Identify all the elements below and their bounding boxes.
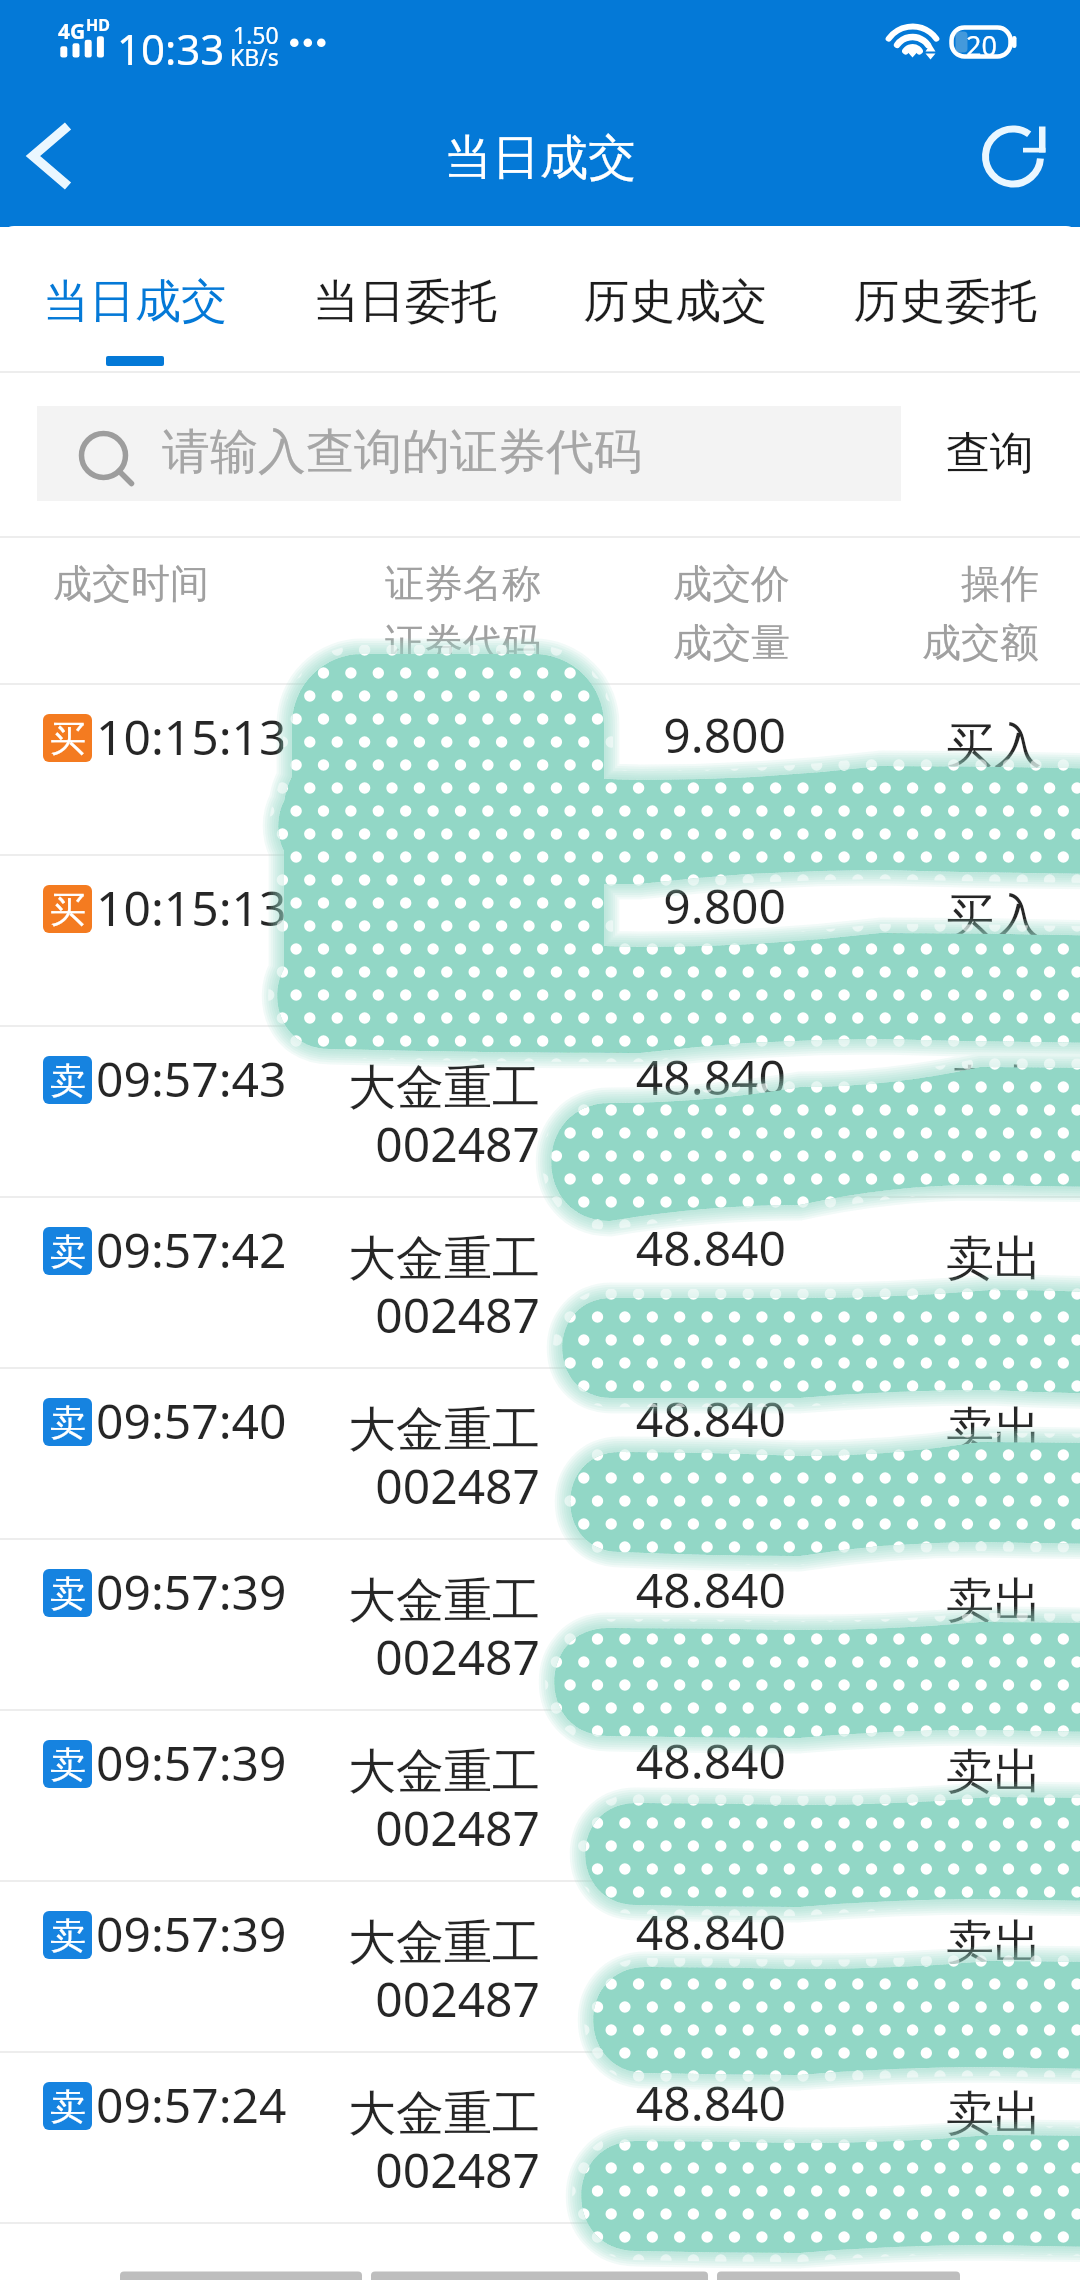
- staticText: 当日成交: [444, 128, 636, 188]
- staticText: 证券代码: [320, 618, 541, 667]
- button[interactable]: 卖: [0, 1027, 1080, 1198]
- staticText: 卖出: [946, 1571, 1042, 1631]
- staticText: 48.840: [590, 1386, 786, 1451]
- staticText: 卖: [50, 1058, 86, 1103]
- staticText: 卖: [50, 1571, 86, 1616]
- staticText: 买: [50, 887, 86, 932]
- staticText: 成交时间: [53, 559, 209, 608]
- staticText: 卖: [50, 1400, 86, 1445]
- staticText: 10:33: [117, 20, 225, 77]
- button[interactable]: Refresh: [962, 104, 1066, 208]
- staticText: 当日委托: [313, 273, 497, 331]
- staticText: 002487: [320, 2137, 540, 2202]
- button[interactable]: 卖: [0, 1711, 1080, 1882]
- button[interactable]: 买: [0, 685, 1080, 856]
- staticText: 大金重工: [320, 1742, 540, 1802]
- staticText: HD: [86, 14, 110, 36]
- staticText: 卖出: [946, 2084, 1042, 2144]
- button[interactable]: Back: [0, 104, 104, 208]
- staticText: 卖: [50, 2084, 86, 2129]
- staticText: 48.840: [590, 1044, 786, 1109]
- button[interactable]: 查询: [946, 406, 1034, 501]
- staticText: 卖出: [946, 1742, 1042, 1802]
- staticText: 当日成交: [43, 273, 227, 331]
- staticText: 卖: [50, 1913, 86, 1958]
- staticText: 09:57:24: [96, 2072, 287, 2137]
- staticText: 48.840: [590, 1557, 786, 1622]
- button[interactable]: 当日成交: [0, 227, 270, 373]
- staticText: 操作: [800, 559, 1039, 608]
- staticText: 请输入查询的证券代码: [162, 422, 642, 482]
- staticText: 卖出: [946, 1400, 1042, 1460]
- staticText: 卖出: [946, 1058, 1042, 1118]
- staticText: 大金重工: [320, 1058, 540, 1118]
- staticText: 002487: [320, 1966, 540, 2031]
- staticText: 大金重工: [320, 1400, 540, 1460]
- staticText: 历史委托: [853, 273, 1037, 331]
- staticText: 09:57:42: [96, 1217, 287, 1282]
- staticText: 10:15:13: [96, 875, 287, 940]
- staticText: 证券名称: [320, 559, 541, 608]
- staticText: 4G: [58, 17, 86, 46]
- staticText: 20: [966, 27, 997, 61]
- staticText: 09:57:39: [96, 1901, 287, 1966]
- staticText: 大金重工: [320, 1571, 540, 1631]
- staticText: 002487: [320, 1795, 540, 1860]
- staticText: 查询: [946, 426, 1034, 481]
- staticText: 09:57:43: [96, 1046, 287, 1111]
- staticText: 48.840: [590, 2070, 786, 2135]
- staticText: 002487: [320, 1624, 540, 1689]
- button[interactable]: 卖: [0, 1882, 1080, 2053]
- staticText: 09:57:39: [96, 1730, 287, 1795]
- button[interactable]: 历史委托: [810, 227, 1080, 373]
- staticText: 9.800: [590, 873, 786, 938]
- staticText: 大金重工: [320, 1229, 540, 1289]
- staticText: [320, 716, 540, 781]
- button[interactable]: 当日委托: [270, 227, 540, 373]
- staticText: 成交价: [590, 559, 790, 608]
- staticText: 大金重工: [320, 1913, 540, 1973]
- button[interactable]: 请输入查询的证券代码: [37, 406, 901, 501]
- staticText: 历史成交: [583, 273, 767, 331]
- staticText: 卖出: [946, 1913, 1042, 1973]
- button[interactable]: 卖: [0, 2053, 1080, 2224]
- staticText: 09:57:39: [96, 1559, 287, 1624]
- staticText: 卖: [50, 1742, 86, 1787]
- staticText: 09:57:40: [96, 1388, 287, 1453]
- staticText: KB/s: [230, 41, 279, 72]
- staticText: 卖: [50, 1229, 86, 1274]
- button[interactable]: 买: [0, 856, 1080, 1027]
- button[interactable]: 卖: [0, 1540, 1080, 1711]
- button[interactable]: 卖: [0, 1369, 1080, 1540]
- staticText: 1.50: [233, 19, 279, 50]
- staticText: 48.840: [590, 1899, 786, 1964]
- staticText: 卖出: [946, 1229, 1042, 1289]
- button[interactable]: 历史成交: [540, 227, 810, 373]
- staticText: [320, 769, 540, 834]
- staticText: 002487: [320, 1282, 540, 1347]
- staticText: 成交量: [590, 618, 790, 667]
- staticText: [320, 940, 540, 1005]
- staticText: 买入: [946, 887, 1042, 947]
- staticText: 002487: [320, 1453, 540, 1518]
- button[interactable]: 卖: [0, 1198, 1080, 1369]
- staticText: 成交额: [800, 618, 1039, 667]
- staticText: 002487: [320, 1111, 540, 1176]
- staticText: 48.840: [590, 1728, 786, 1793]
- staticText: 48.840: [590, 1215, 786, 1280]
- staticText: 10:15:13: [96, 704, 287, 769]
- staticText: 9.800: [590, 702, 786, 767]
- staticText: 买: [50, 716, 86, 761]
- staticText: [320, 887, 540, 952]
- staticText: 买入: [946, 716, 1042, 776]
- staticText: 大金重工: [320, 2084, 540, 2144]
